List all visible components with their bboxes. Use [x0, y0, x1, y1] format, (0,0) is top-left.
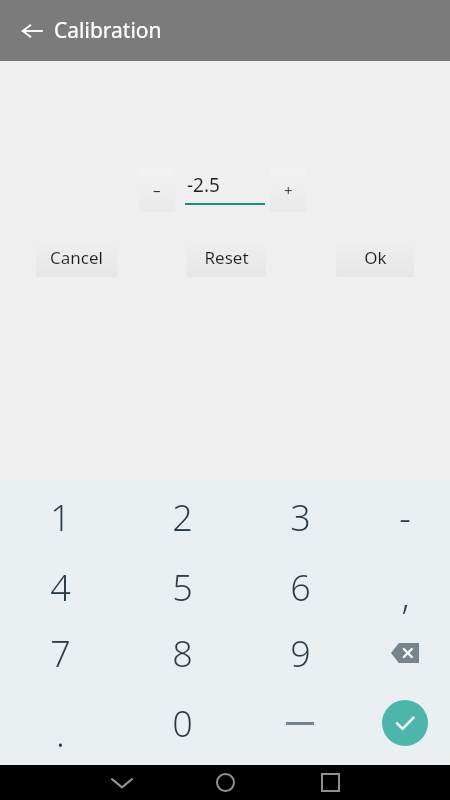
staticText: 7	[50, 629, 71, 678]
button[interactable]: .	[10, 700, 110, 766]
button[interactable]: Confirm	[362, 690, 448, 756]
staticText: +	[284, 180, 293, 200]
button[interactable]: Home	[203, 765, 247, 800]
button[interactable]: Cancel	[36, 237, 117, 277]
staticText: 9	[290, 629, 311, 678]
staticText: .	[56, 709, 65, 758]
staticText: 6	[290, 563, 311, 612]
staticText: Ok	[364, 246, 387, 269]
staticText: Reset	[204, 246, 249, 269]
button[interactable]: Decrease	[139, 168, 175, 212]
button[interactable]: Ok	[336, 237, 414, 277]
button[interactable]: 0	[132, 690, 232, 756]
button[interactable]: ,	[355, 562, 450, 628]
button[interactable]: 1	[10, 484, 110, 550]
staticText: 1	[50, 493, 71, 542]
button[interactable]: 7	[10, 620, 110, 686]
staticText: 4	[50, 563, 71, 612]
button[interactable]: 8	[132, 620, 232, 686]
button[interactable]: -2.5	[185, 168, 265, 212]
staticText: ,	[401, 571, 410, 620]
staticText: 8	[172, 629, 193, 678]
button[interactable]: 3	[250, 484, 350, 550]
button[interactable]: 9	[250, 620, 350, 686]
staticText: 3	[290, 493, 311, 542]
staticText: –	[153, 180, 161, 200]
button[interactable]: 5	[132, 554, 232, 620]
button[interactable]: Back	[100, 765, 144, 800]
staticText: 2	[172, 493, 193, 542]
staticText: 0	[172, 699, 193, 748]
staticText: Cancel	[50, 246, 103, 269]
button[interactable]: Recent apps	[308, 765, 352, 800]
button[interactable]: Backspace	[362, 620, 448, 686]
button[interactable]: 2	[132, 484, 232, 550]
staticText: Calibration	[54, 16, 162, 45]
button[interactable]: Back	[12, 11, 52, 51]
staticText: -	[399, 493, 411, 542]
button[interactable]: 6	[250, 554, 350, 620]
button[interactable]: 4	[10, 554, 110, 620]
button[interactable]: Increase	[270, 168, 306, 212]
staticText: -2.5	[187, 172, 220, 198]
staticText: 5	[172, 563, 193, 612]
button[interactable]: Reset	[187, 237, 266, 277]
button[interactable]: Underscore	[257, 690, 343, 756]
button[interactable]: -	[355, 484, 450, 550]
